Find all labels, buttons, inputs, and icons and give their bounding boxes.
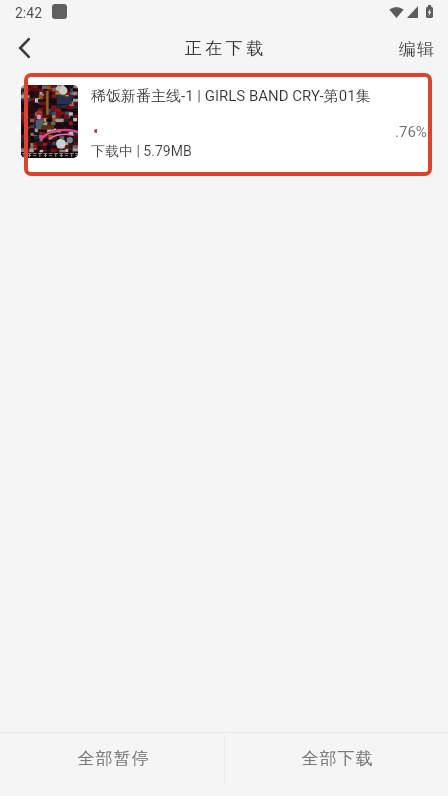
- staticText: 全部下载: [301, 748, 373, 769]
- button[interactable]: 全部暂停: [0, 726, 224, 790]
- button[interactable]: Back: [0, 26, 50, 73]
- staticText: 编辑: [398, 39, 435, 60]
- staticText: 2:42: [15, 5, 42, 21]
- staticText: 下载中 | 5.79MB: [91, 143, 192, 161]
- button[interactable]: 编辑: [384, 26, 448, 73]
- button[interactable]: 全部下载: [224, 726, 448, 790]
- staticText: .76%: [395, 123, 427, 141]
- staticText: 稀饭新番主线-1 | GIRLS BAND CRY-第01集: [91, 87, 433, 106]
- staticText: 全部暂停: [77, 748, 149, 769]
- button[interactable]: 稀饭新番主线-1 | GIRLS BAND CRY-第01集: [24, 73, 432, 176]
- staticText: 正在下载: [183, 38, 265, 59]
